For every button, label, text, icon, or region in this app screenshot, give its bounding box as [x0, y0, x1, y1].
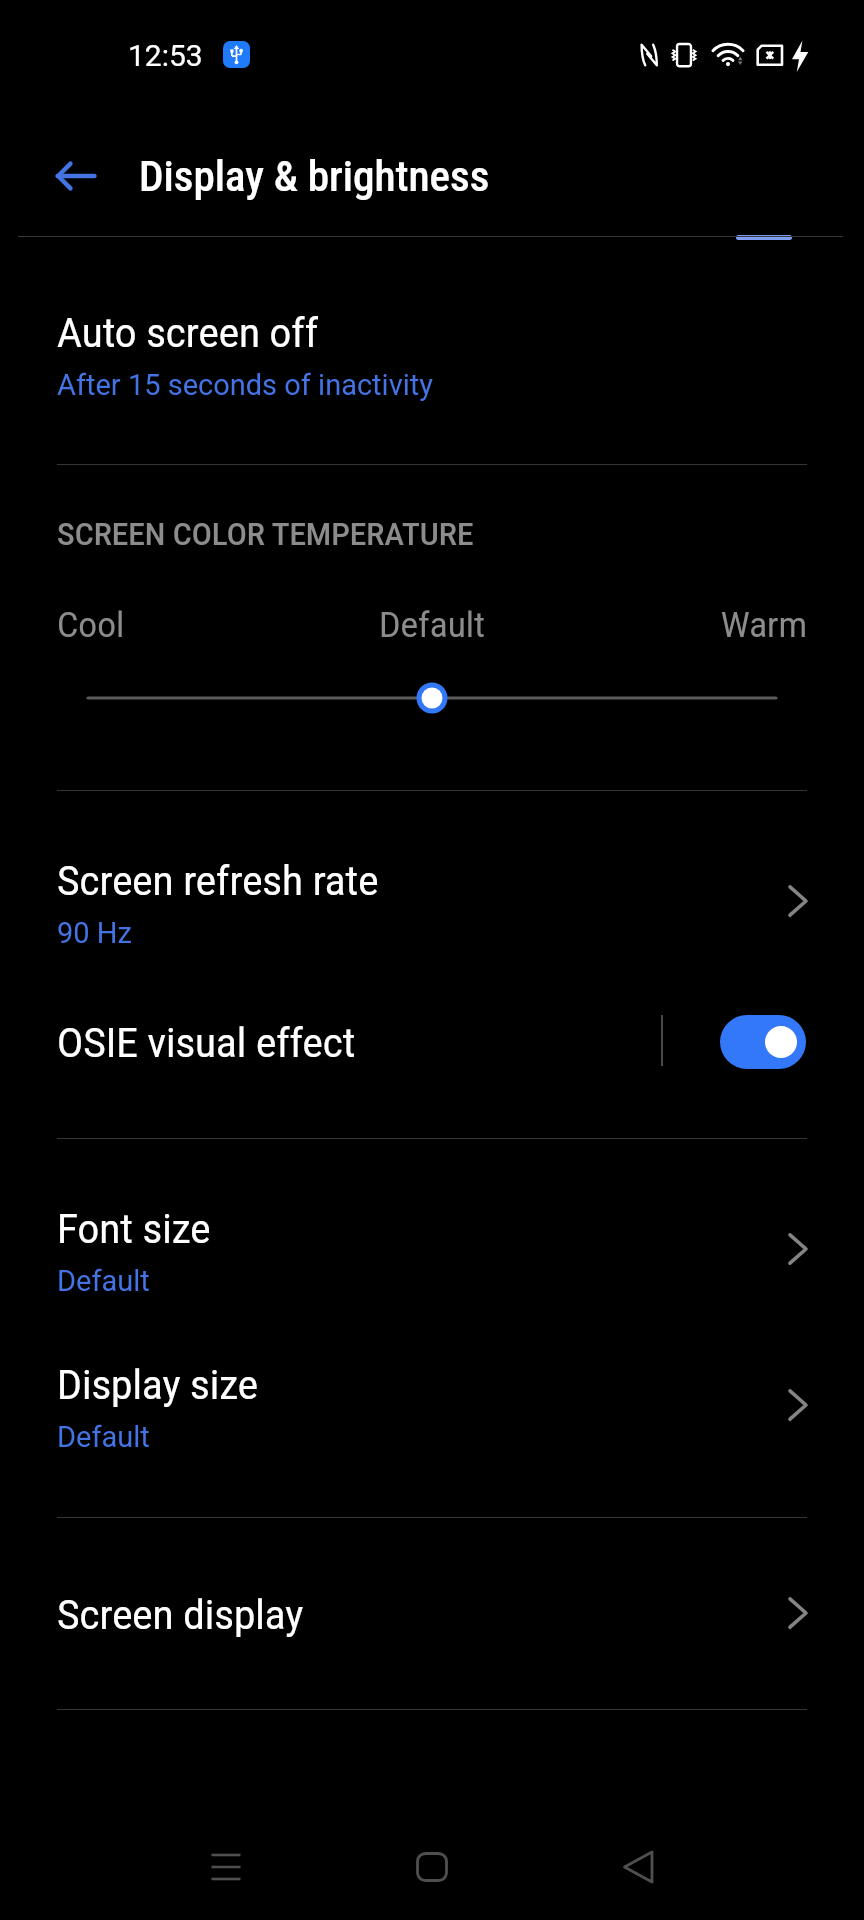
button[interactable]: Screen colour temperature slider — [57, 672, 807, 724]
button[interactable]: Auto screen off — [0, 270, 864, 420]
staticText: Display & brightness — [139, 152, 490, 201]
staticText: Auto screen off — [57, 310, 319, 357]
staticText: Default — [57, 1420, 150, 1454]
staticText: 12:53 — [128, 38, 203, 73]
button[interactable]: Screen display — [0, 1548, 864, 1668]
staticText: Cool — [57, 605, 125, 646]
staticText: Display size — [57, 1362, 259, 1409]
button[interactable]: Display size — [0, 1322, 864, 1472]
staticText: Default — [0, 605, 864, 646]
staticText: 90 Hz — [57, 916, 132, 950]
button[interactable]: Back — [593, 1827, 685, 1907]
button[interactable]: Screen refresh rate — [0, 818, 864, 968]
staticText: Screen display — [57, 1592, 304, 1639]
button[interactable]: Home — [386, 1827, 478, 1907]
staticText: Font size — [57, 1206, 211, 1253]
staticText: After 15 seconds of inactivity — [57, 368, 433, 402]
button[interactable]: Font size — [0, 1166, 864, 1316]
button[interactable]: OSIE visual effect — [0, 976, 864, 1096]
staticText: Default — [57, 1264, 150, 1298]
staticText: Warm — [0, 605, 807, 646]
button[interactable]: Navigate up — [33, 134, 117, 218]
staticText: Screen refresh rate — [57, 858, 379, 905]
button[interactable]: Recent apps — [180, 1827, 272, 1907]
button[interactable]: OSIE visual effect, on — [720, 1015, 806, 1069]
staticText: OSIE visual effect — [57, 1020, 356, 1067]
staticText: SCREEN COLOR TEMPERATURE — [57, 516, 474, 552]
